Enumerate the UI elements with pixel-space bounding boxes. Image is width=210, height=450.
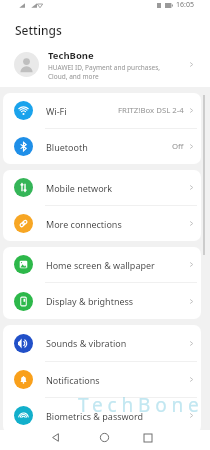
staticText: Mobile network	[46, 182, 113, 194]
staticText: Off	[172, 141, 184, 152]
button[interactable]: Bluetooth	[3, 129, 201, 164]
button[interactable]: TechBone	[0, 42, 210, 87]
button[interactable]: Biometrics & password	[3, 398, 201, 433]
staticText: 16:05	[176, 0, 194, 10]
button[interactable]: Back	[46, 433, 66, 450]
staticText: Display & brightness	[46, 295, 134, 307]
staticText: Notifications	[46, 374, 100, 386]
button[interactable]: Display & brightness	[3, 283, 201, 319]
staticText: HUAWEI ID, Payment and purchases,	[48, 63, 161, 72]
staticText: More connections	[46, 218, 122, 230]
staticText: Biometrics & password	[46, 410, 144, 422]
staticText: Home screen & wallpaper	[46, 259, 155, 271]
button[interactable]: Home	[95, 433, 115, 450]
staticText: TechBone	[48, 49, 94, 62]
staticText: Cloud, and more	[48, 72, 99, 81]
staticText: Bluetooth	[46, 141, 88, 153]
button[interactable]: Notifications	[3, 362, 201, 397]
staticText: TechBone	[78, 392, 204, 418]
button[interactable]: Mobile network	[3, 170, 201, 205]
staticText: Wi-Fi	[46, 105, 67, 117]
button[interactable]: More connections	[3, 206, 201, 241]
staticText: FRITZ!Box DSL 2-4	[118, 105, 184, 116]
button[interactable]: Home screen & wallpaper	[3, 247, 201, 282]
button[interactable]: Wi-Fi	[3, 93, 201, 128]
button[interactable]: Sounds & vibration	[3, 325, 201, 361]
staticText: Sounds & vibration	[46, 337, 127, 349]
staticText: Settings	[15, 22, 62, 38]
button[interactable]: Recent apps	[138, 433, 158, 450]
